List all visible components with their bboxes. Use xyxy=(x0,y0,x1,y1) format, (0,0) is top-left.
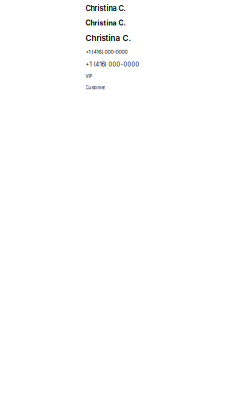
staticText: Christina C. xyxy=(85,4,125,13)
staticText: Customer xyxy=(85,85,105,90)
staticText: Christina C. xyxy=(85,33,131,43)
staticText: +1 (416) 000-0000 xyxy=(85,49,127,55)
staticText: Christina C. xyxy=(85,19,125,27)
staticText: VIP xyxy=(85,74,92,79)
staticText: +1 (416) 000-0000 xyxy=(85,61,139,68)
